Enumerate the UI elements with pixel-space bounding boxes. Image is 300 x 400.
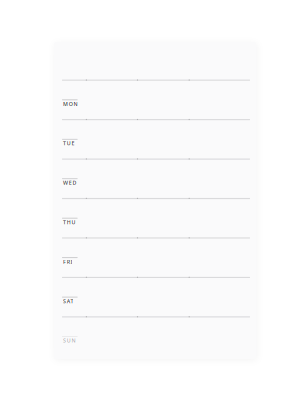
staticText: WED <box>63 179 76 186</box>
button[interactable]: FRI <box>62 257 92 266</box>
staticText: FRI <box>63 258 72 265</box>
button[interactable]: SUN <box>62 336 92 345</box>
staticText: MON <box>63 100 77 107</box>
staticText: TUE <box>63 140 74 147</box>
button[interactable]: WED <box>62 178 92 187</box>
staticText: SAT <box>63 297 73 305</box>
button[interactable]: TUE <box>62 139 92 148</box>
button[interactable]: THU <box>62 218 92 227</box>
staticText: THU <box>63 219 75 226</box>
button[interactable]: SAT <box>62 297 92 306</box>
staticText: SUN <box>63 337 75 344</box>
button[interactable]: MON <box>62 99 92 108</box>
